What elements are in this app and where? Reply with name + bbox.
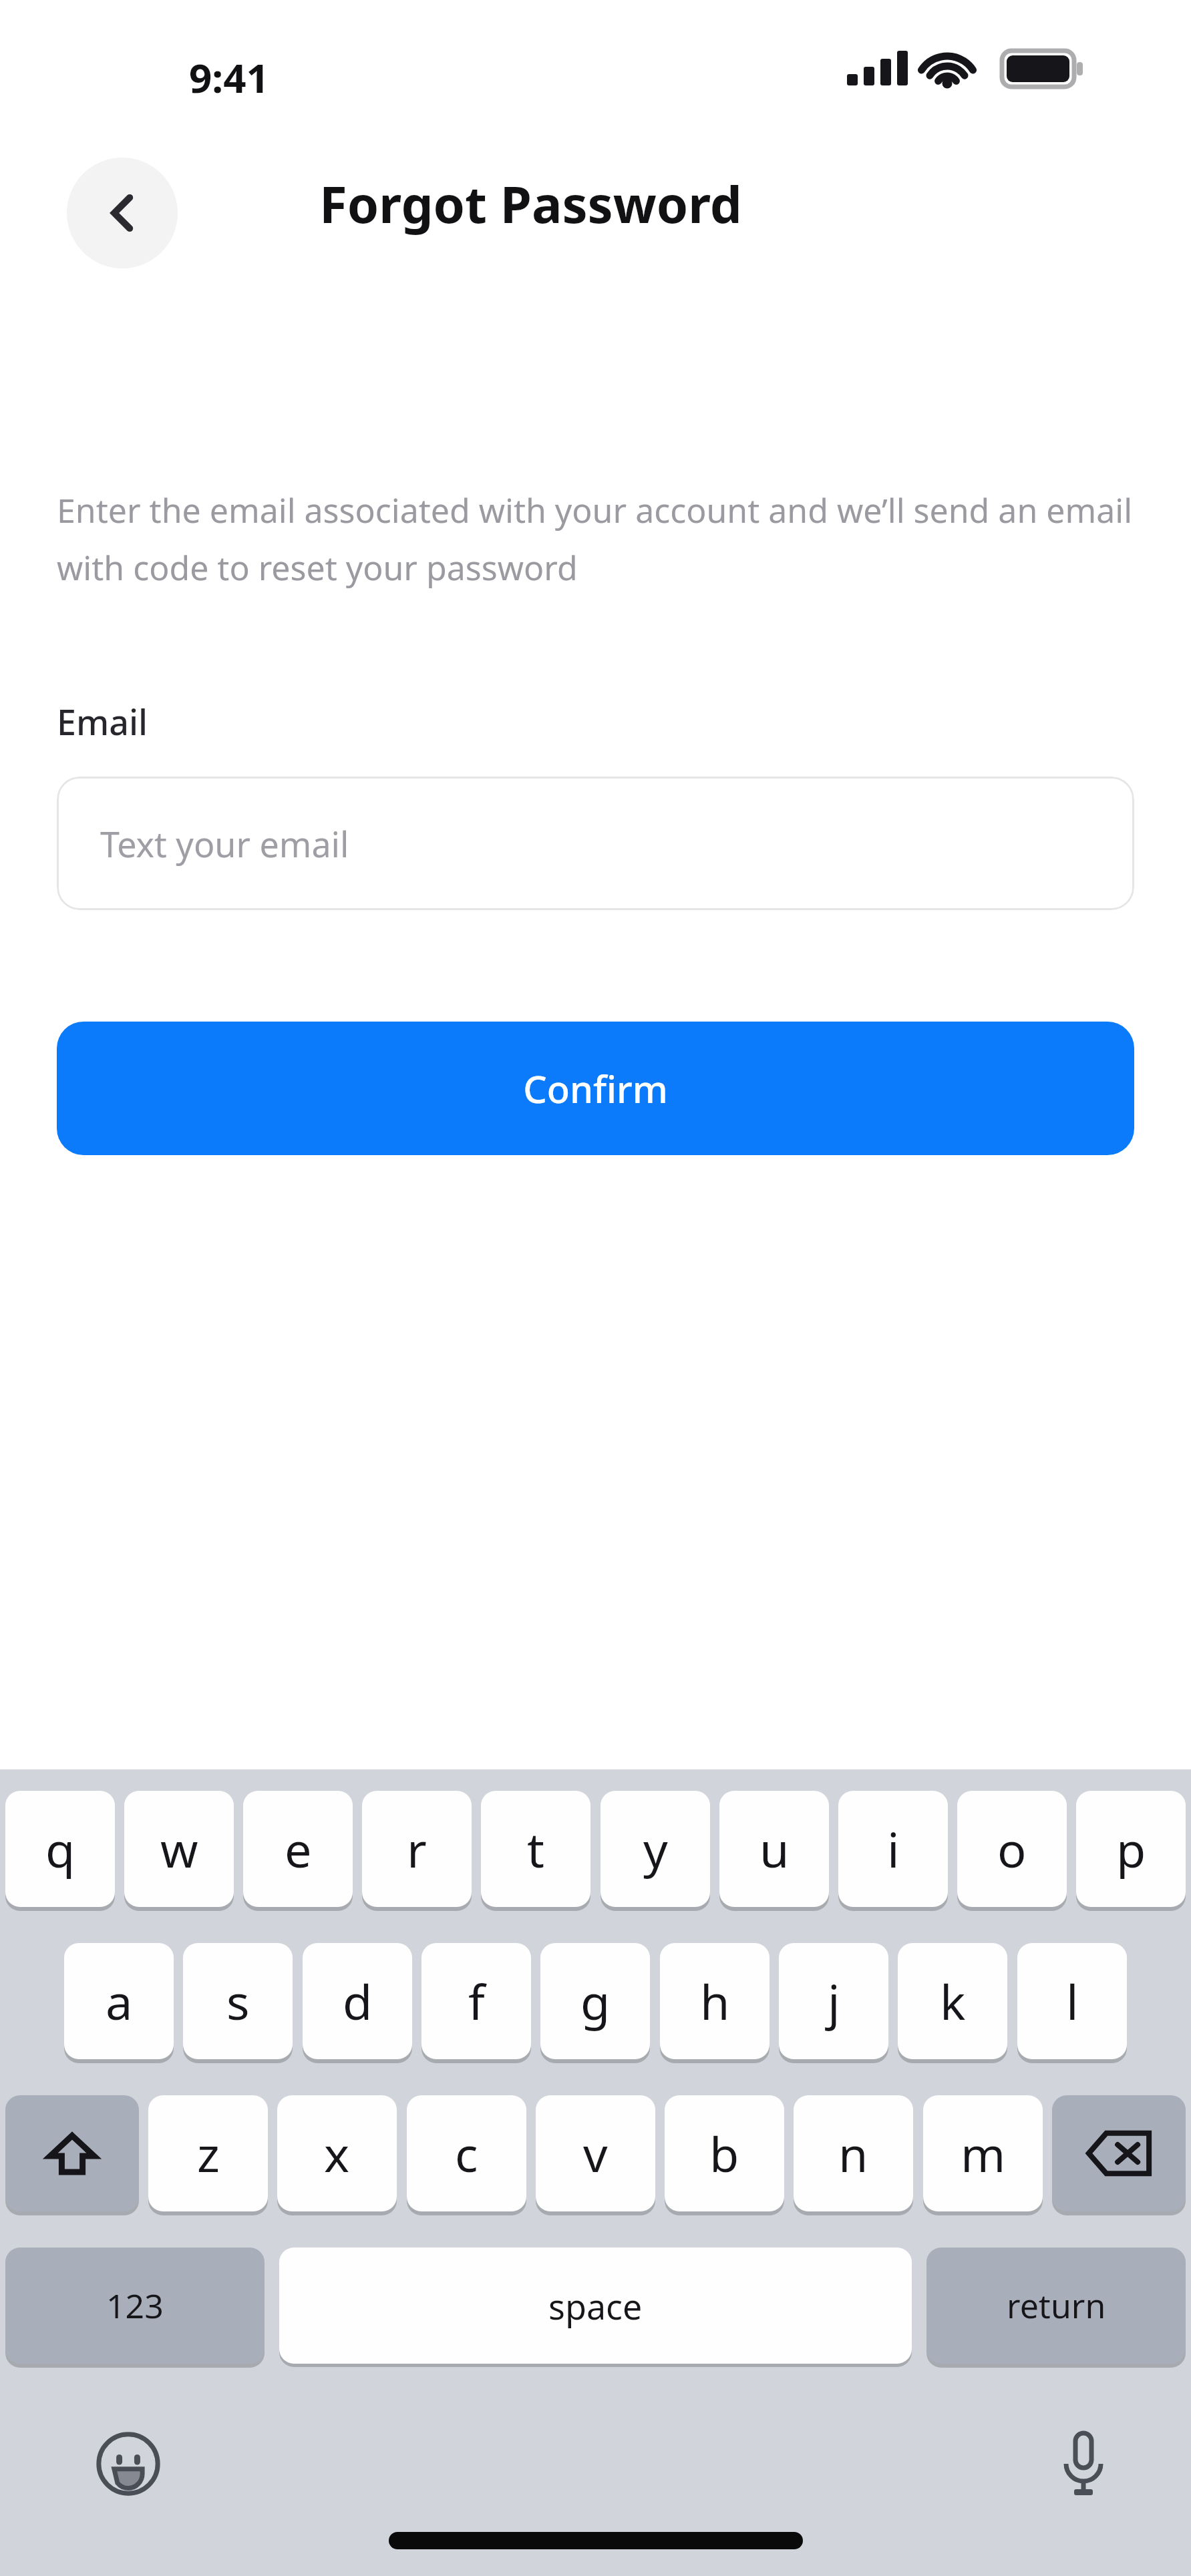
button[interactable]: space (279, 2247, 912, 2364)
button[interactable]: f (421, 1943, 531, 2059)
button[interactable]: i (838, 1791, 948, 1907)
button[interactable]: v (536, 2095, 655, 2211)
staticText: Enter the email associated with your acc… (57, 487, 1139, 590)
button[interactable]: a (64, 1943, 174, 2059)
staticText: Forgot Password (319, 169, 742, 238)
staticText: r (407, 1816, 427, 1882)
button[interactable]: b (665, 2095, 784, 2211)
button[interactable]: x (277, 2095, 397, 2211)
staticText: h (700, 1968, 730, 2034)
staticText: t (527, 1816, 544, 1882)
button[interactable]: j (779, 1943, 888, 2059)
staticText: d (343, 1968, 373, 2034)
button[interactable]: Back (67, 158, 178, 268)
button[interactable]: h (660, 1943, 770, 2059)
staticText: p (1116, 1816, 1146, 1882)
button[interactable]: w (124, 1791, 234, 1907)
button[interactable]: c (407, 2095, 526, 2211)
button[interactable]: u (719, 1791, 829, 1907)
button[interactable]: d (303, 1943, 412, 2059)
button[interactable]: m (923, 2095, 1043, 2211)
button[interactable]: e (243, 1791, 353, 1907)
button[interactable]: s (183, 1943, 293, 2059)
button[interactable]: n (794, 2095, 913, 2211)
button[interactable]: l (1017, 1943, 1127, 2059)
staticText: u (759, 1816, 790, 1882)
staticText: 123 (106, 2283, 164, 2328)
staticText: n (838, 2121, 868, 2186)
staticText: b (709, 2121, 739, 2186)
button[interactable]: Confirm (57, 1022, 1134, 1155)
staticText: 9:41 (189, 50, 269, 105)
staticText: l (1066, 1968, 1079, 2034)
button[interactable]: Shift (5, 2095, 139, 2211)
button[interactable]: Dictation (1037, 2416, 1130, 2509)
button[interactable]: Text your email (57, 777, 1134, 910)
button[interactable]: 123 (5, 2247, 265, 2364)
staticText: i (887, 1816, 900, 1882)
button[interactable]: g (540, 1943, 650, 2059)
staticText: y (643, 1816, 668, 1882)
staticText: o (997, 1816, 1027, 1882)
staticText: a (106, 1968, 133, 2034)
staticText: x (324, 2121, 350, 2186)
staticText: q (45, 1816, 75, 1882)
staticText: k (940, 1968, 966, 2034)
staticText: e (285, 1816, 312, 1882)
staticText: f (468, 1968, 485, 2034)
button[interactable]: r (362, 1791, 472, 1907)
button[interactable]: p (1076, 1791, 1186, 1907)
button[interactable]: o (957, 1791, 1067, 1907)
button[interactable]: z (148, 2095, 268, 2211)
staticText: Email (57, 698, 148, 745)
button[interactable]: t (481, 1791, 590, 1907)
button[interactable]: q (5, 1791, 115, 1907)
staticText: g (580, 1968, 611, 2034)
staticText: Text your email (100, 820, 349, 867)
staticText: m (961, 2121, 1006, 2186)
staticText: c (455, 2121, 478, 2186)
staticText: Confirm (523, 1063, 668, 1114)
staticText: s (226, 1968, 250, 2034)
button[interactable]: k (898, 1943, 1007, 2059)
button[interactable]: return (926, 2247, 1186, 2364)
button[interactable]: Emoji keyboard (81, 2417, 175, 2511)
button[interactable]: Backspace (1052, 2095, 1186, 2211)
staticText: space (548, 2282, 643, 2330)
staticText: j (828, 1968, 840, 2034)
button[interactable]: y (601, 1791, 710, 1907)
staticText: return (1007, 2283, 1106, 2328)
staticText: w (160, 1816, 198, 1882)
staticText: v (583, 2121, 608, 2186)
staticText: z (197, 2121, 220, 2186)
